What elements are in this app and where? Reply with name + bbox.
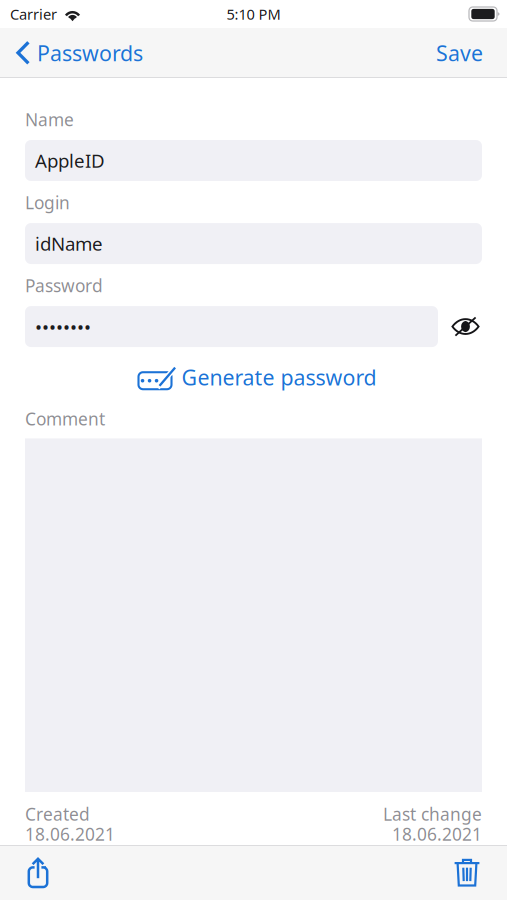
staticText: •••••••• [35,314,91,339]
button[interactable]: Save [412,28,507,78]
staticText: Generate password [181,363,376,391]
staticText: 5:10 PM [226,4,280,24]
button[interactable]: Share [12,845,64,900]
staticText: Comment [25,407,105,430]
staticText: Login [25,191,70,214]
button[interactable]: Delete [441,845,493,900]
button[interactable]: Passwords [0,28,153,78]
staticText: AppleID [35,148,105,173]
staticText: 18.06.2021 [25,822,115,845]
staticText: 18.06.2021 [392,822,482,845]
staticText: Created [25,802,90,825]
staticText: Password [25,274,103,297]
staticText: Passwords [37,39,143,67]
staticText: Last change [383,802,482,825]
staticText: idName [35,231,103,256]
staticText: Name [25,108,74,131]
staticText: Carrier [10,4,57,24]
staticText: Save [436,39,483,67]
button[interactable]: Generate password [25,363,482,391]
button[interactable]: Show password [438,306,482,347]
